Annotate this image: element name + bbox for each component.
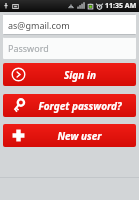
button[interactable]: Forget password xyxy=(3,94,136,117)
staticText: Password xyxy=(8,42,49,54)
button[interactable]: New user xyxy=(3,124,136,147)
staticText: Forget password? xyxy=(38,99,122,113)
staticText: Sign in xyxy=(64,68,96,82)
staticText: as@gmail.com xyxy=(8,19,70,31)
staticText: 11:35 AM xyxy=(105,1,137,11)
button[interactable]: as@gmail.com xyxy=(3,14,136,35)
button[interactable]: Password xyxy=(3,37,136,59)
staticText: New user xyxy=(57,129,102,143)
button[interactable]: Sign in xyxy=(3,63,136,86)
